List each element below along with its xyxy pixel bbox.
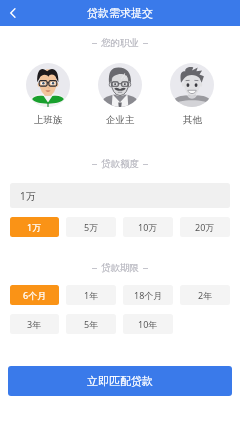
- staticText: 5年: [84, 318, 99, 330]
- button[interactable]: 企业主: [98, 63, 142, 107]
- button[interactable]: 18个月: [123, 285, 173, 305]
- staticText: 6个月: [23, 289, 47, 301]
- staticText: 1年: [84, 289, 99, 301]
- button[interactable]: 3年: [10, 314, 59, 334]
- staticText: 1万: [27, 221, 42, 233]
- button[interactable]: 6个月: [10, 285, 59, 305]
- button[interactable]: 立即匹配贷款: [8, 366, 232, 396]
- staticText: 上班族: [34, 114, 63, 126]
- button[interactable]: 1年: [66, 285, 116, 305]
- staticText: 贷款额度: [101, 158, 139, 170]
- button[interactable]: Back: [0, 0, 26, 26]
- button[interactable]: 5万: [66, 217, 116, 237]
- staticText: 其他: [183, 114, 202, 126]
- staticText: 立即匹配贷款: [87, 374, 153, 388]
- staticText: 贷款期限: [101, 262, 139, 274]
- button[interactable]: 10万: [123, 217, 173, 237]
- button[interactable]: 1万: [10, 217, 59, 237]
- button[interactable]: 上班族: [26, 63, 70, 107]
- staticText: 18个月: [134, 289, 163, 301]
- staticText: 2年: [198, 289, 213, 301]
- button[interactable]: 5年: [66, 314, 116, 334]
- button[interactable]: 其他: [170, 63, 214, 107]
- button[interactable]: 20万: [180, 217, 230, 237]
- staticText: 10年: [138, 318, 158, 330]
- staticText: 1万: [20, 189, 36, 203]
- staticText: 贷款需求提交: [87, 6, 153, 20]
- staticText: 您的职业: [101, 37, 139, 49]
- staticText: 企业主: [106, 114, 135, 126]
- staticText: 20万: [195, 221, 215, 233]
- staticText: 5万: [84, 221, 99, 233]
- button[interactable]: 2年: [180, 285, 230, 305]
- button[interactable]: 10年: [123, 314, 173, 334]
- button[interactable]: 1万: [10, 183, 230, 208]
- staticText: 10万: [138, 221, 158, 233]
- staticText: 3年: [27, 318, 42, 330]
